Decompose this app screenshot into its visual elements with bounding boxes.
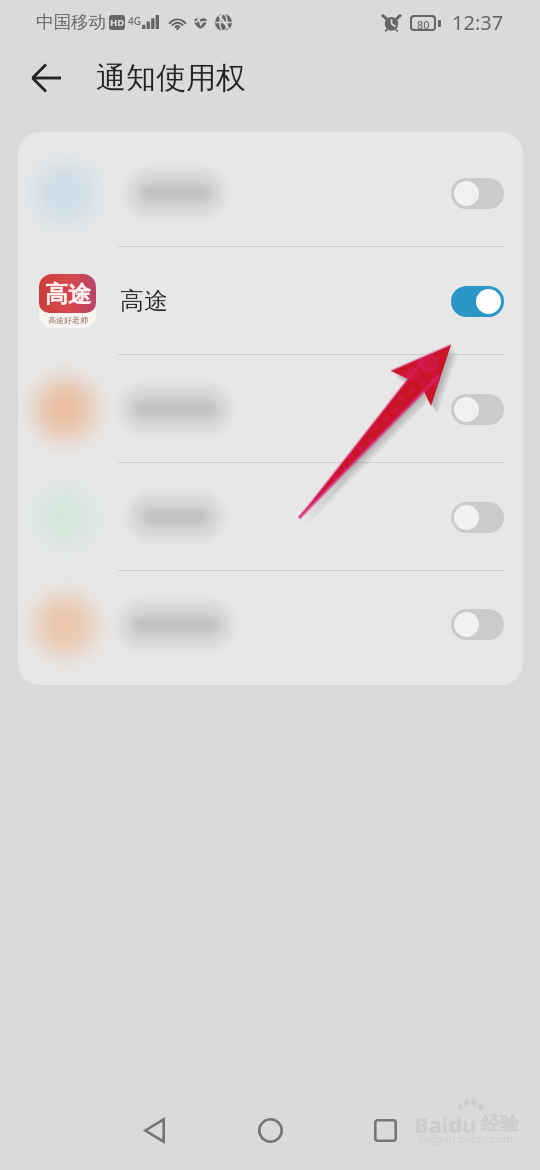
button[interactable]: Switch on xyxy=(451,286,504,317)
button[interactable]: Recents xyxy=(359,1104,411,1156)
staticText: 通知使用权 xyxy=(96,59,246,97)
button[interactable]: Switch off xyxy=(18,571,523,678)
button[interactable]: Back xyxy=(128,1104,180,1156)
staticText: 经验 xyxy=(481,1112,519,1136)
staticText: 中国移动 xyxy=(36,11,106,33)
staticText: 高途 xyxy=(120,286,168,316)
button[interactable]: Switch off xyxy=(451,178,504,209)
staticText: 12:37 xyxy=(452,9,504,36)
staticText: HD xyxy=(110,16,125,29)
staticText: 4G xyxy=(128,14,141,28)
button[interactable]: Switch off xyxy=(451,502,504,533)
button[interactable]: Back xyxy=(18,50,74,106)
button[interactable]: Home xyxy=(244,1104,296,1156)
staticText: Baidu xyxy=(414,1109,477,1139)
staticText: 高途好老师 xyxy=(48,315,88,325)
staticText: 80 xyxy=(417,17,430,29)
staticText: 高途 xyxy=(45,280,91,309)
button[interactable]: Switch off xyxy=(451,394,504,425)
button[interactable]: 高途 xyxy=(18,247,523,355)
button[interactable]: Switch off xyxy=(18,355,523,463)
button[interactable]: Switch off xyxy=(18,139,523,247)
button[interactable]: Switch off xyxy=(18,463,523,571)
button[interactable]: Switch off xyxy=(451,609,504,640)
staticText: jingyan.baidu.com xyxy=(418,1131,514,1146)
